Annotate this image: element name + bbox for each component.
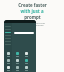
button[interactable]: App shortcut (7, 66, 10, 71)
staticText: with just a (20, 8, 44, 14)
button[interactable]: App shortcut (7, 59, 10, 64)
button[interactable]: App shortcut (7, 52, 10, 57)
button[interactable]: App shortcut (25, 59, 28, 64)
button[interactable]: App shortcut (16, 59, 19, 64)
button[interactable]: App shortcut (25, 66, 28, 71)
staticText: Create faster (18, 2, 47, 8)
button[interactable]: App shortcut (25, 52, 28, 57)
button[interactable]: App shortcut (16, 66, 19, 71)
button[interactable] (5, 32, 11, 33)
staticText: Design, build and ship your app in minut… (20, 21, 45, 27)
staticText: prompt (24, 14, 41, 20)
button[interactable]: Prompt (14, 32, 34, 34)
button[interactable]: App shortcut (16, 52, 19, 57)
